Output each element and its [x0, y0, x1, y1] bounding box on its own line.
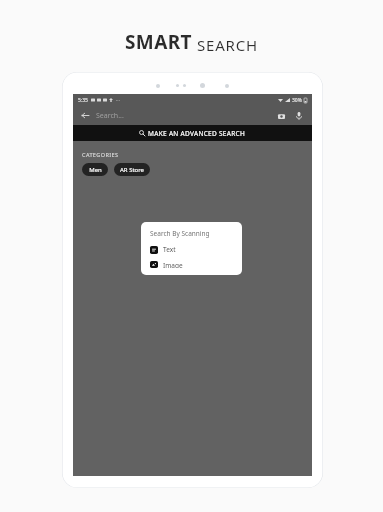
button[interactable]: Men — [82, 163, 108, 176]
staticText: 5:35 — [78, 97, 88, 104]
button[interactable]: Voice search — [293, 110, 305, 122]
button[interactable]: AR Store — [114, 163, 150, 176]
staticText: SEARCH — [197, 35, 258, 55]
button[interactable]: Back — [80, 110, 91, 121]
button[interactable]: Text — [150, 245, 233, 254]
staticText: MAKE AN ADVANCED SEARCH — [148, 129, 246, 138]
staticText: ··· — [116, 97, 121, 104]
button[interactable]: Search by camera — [275, 110, 287, 122]
staticText: Text — [163, 245, 176, 254]
button[interactable]: MAKE AN ADVANCED SEARCH — [73, 125, 312, 141]
staticText: CATEGORIES — [82, 151, 119, 158]
staticText: Search... — [96, 111, 124, 121]
staticText: SMART — [125, 29, 192, 55]
staticText: 30% — [292, 97, 302, 104]
staticText: AR Store — [120, 166, 144, 174]
staticText: Image — [163, 261, 183, 268]
button[interactable]: Image — [150, 261, 233, 268]
staticText: Search By Scanning — [150, 229, 210, 238]
staticText: Men — [89, 166, 102, 174]
